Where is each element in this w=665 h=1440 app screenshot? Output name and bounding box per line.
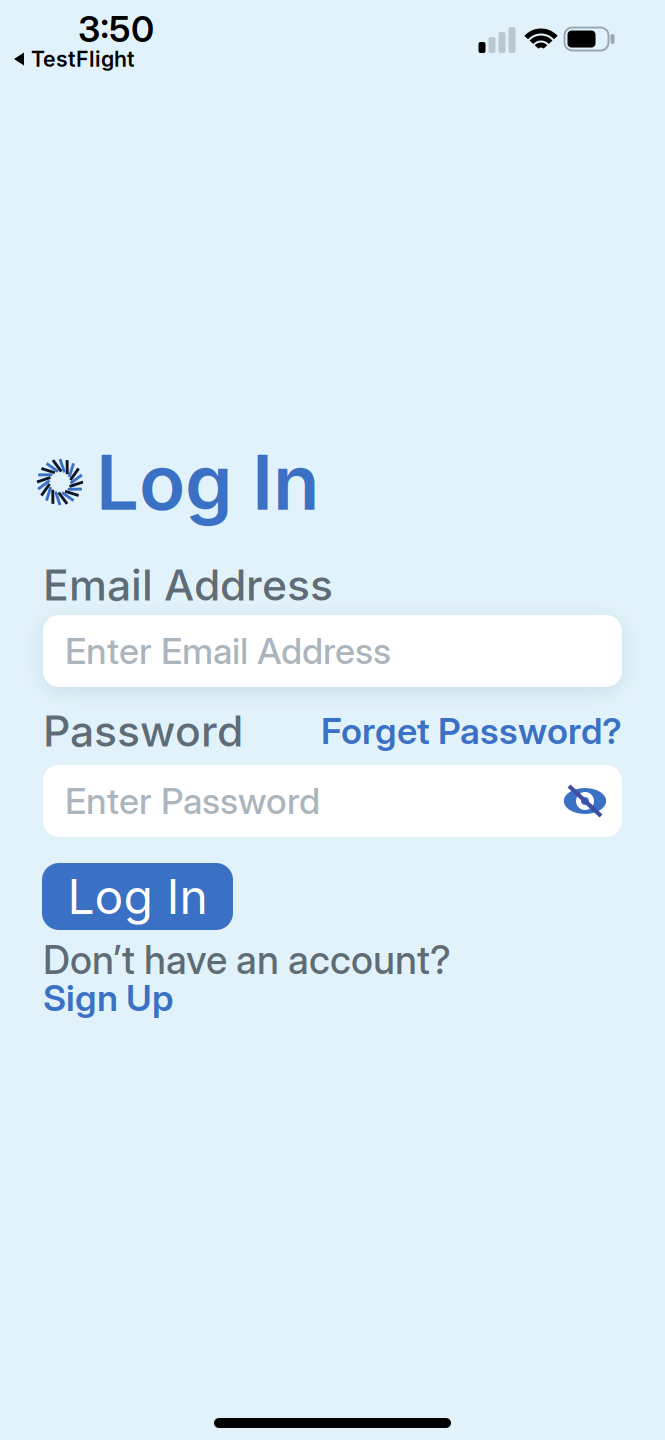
staticText: Enter Email Address [65, 630, 391, 672]
button[interactable]: Sign Up [43, 977, 173, 1019]
button[interactable]: Log In [42, 863, 233, 930]
staticText: Email Address [43, 560, 333, 610]
button[interactable] [562, 783, 608, 819]
button[interactable]: Enter Email Address [43, 615, 622, 687]
staticText: TestFlight [31, 46, 135, 72]
staticText: Password [43, 706, 243, 756]
staticText: Enter Password [65, 780, 320, 822]
staticText: Sign Up [43, 977, 173, 1019]
staticText: Log In [67, 868, 207, 925]
button[interactable]: Enter Password [43, 765, 622, 837]
staticText: Forget Password? [321, 710, 622, 752]
staticText: 3:50 [78, 8, 154, 50]
staticText: Don’t have an account? [43, 937, 451, 983]
button[interactable]: Forget Password? [321, 710, 622, 752]
staticText: Log In [96, 437, 319, 527]
